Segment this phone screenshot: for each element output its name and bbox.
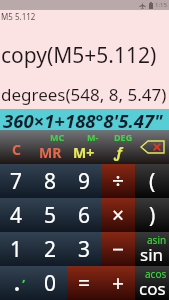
staticText: −	[112, 235, 125, 264]
staticText: 5	[44, 201, 57, 230]
staticText: C	[12, 140, 21, 159]
staticText: M+	[73, 143, 95, 162]
staticText: 360×1+188°8'5.47"	[3, 108, 163, 129]
button[interactable]: C	[0, 130, 33, 164]
button[interactable]: ÷	[101, 164, 135, 198]
button[interactable]: acos	[135, 266, 169, 300]
staticText: ƒ	[115, 143, 122, 162]
button[interactable]: −	[101, 232, 135, 266]
button[interactable]: Backspace	[135, 130, 169, 164]
staticText: cos	[139, 277, 166, 300]
button[interactable]: decimal point	[0, 266, 33, 300]
button[interactable]: 8	[33, 164, 67, 198]
staticText: +	[112, 269, 125, 298]
staticText: MR	[39, 143, 62, 162]
button[interactable]: 9	[67, 164, 101, 198]
staticText: M-	[87, 131, 99, 143]
button[interactable]: 1	[0, 232, 33, 266]
staticText: 1	[10, 235, 23, 264]
staticText: =	[78, 269, 91, 298]
staticText: sin	[140, 243, 164, 266]
staticText: 4	[10, 201, 23, 230]
button[interactable]: asin	[135, 232, 169, 266]
staticText: )	[149, 201, 156, 230]
staticText: 3	[78, 235, 91, 264]
button[interactable]: 3	[67, 232, 101, 266]
staticText: 1:15	[155, 1, 167, 9]
button[interactable]: 2	[33, 232, 67, 266]
staticText: acos	[145, 267, 167, 281]
button[interactable]: equals	[67, 266, 101, 300]
button[interactable]: M+	[67, 130, 101, 164]
button[interactable]: 0	[33, 266, 67, 300]
button[interactable]: )	[135, 198, 169, 232]
staticText: 0	[44, 269, 57, 298]
staticText: DEG	[114, 131, 133, 143]
staticText: (	[149, 167, 156, 196]
staticText: 9	[78, 167, 91, 196]
staticText: degrees(548, 8, 5.47)	[1, 83, 167, 106]
button[interactable]: ƒ	[101, 130, 135, 164]
button[interactable]: 5	[33, 198, 67, 232]
button[interactable]: plus	[101, 266, 135, 300]
button[interactable]: 4	[0, 198, 33, 232]
staticText: M5 5.112	[1, 11, 36, 22]
button[interactable]: MR	[33, 130, 67, 164]
staticText: ,	[22, 267, 26, 285]
staticText: asin	[147, 233, 167, 247]
staticText: 7	[10, 167, 23, 196]
staticText: 8	[44, 167, 57, 196]
button[interactable]: (	[135, 164, 169, 198]
staticText: ×	[112, 201, 125, 230]
staticText: 2	[44, 235, 57, 264]
button[interactable]: ×	[101, 198, 135, 232]
staticText: 6	[78, 201, 91, 230]
staticText: ÷	[112, 167, 125, 196]
button[interactable]: 6	[67, 198, 101, 232]
staticText: MC	[50, 131, 65, 143]
button[interactable]: 7	[0, 164, 33, 198]
staticText: copy(M5+5.112)	[1, 41, 157, 70]
